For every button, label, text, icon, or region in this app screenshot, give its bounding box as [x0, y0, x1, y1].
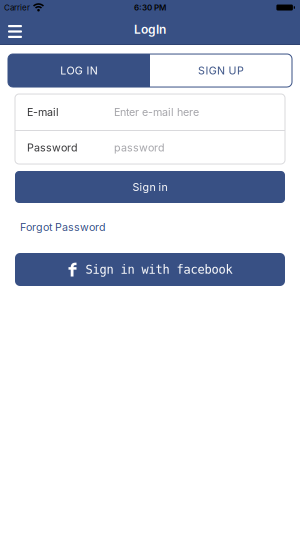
staticText: Password: [27, 141, 78, 154]
button[interactable]: Forgot Password: [20, 221, 106, 233]
staticText: Carrier: [4, 3, 30, 12]
staticText: Enter e-mail here: [114, 106, 199, 118]
staticText: Forgot Password: [20, 221, 106, 233]
button[interactable]: Password: [15, 141, 285, 154]
button[interactable]: LOG IN: [8, 54, 150, 87]
staticText: LOG IN: [60, 64, 98, 77]
staticText: 6:30 PM: [134, 3, 166, 12]
staticText: SIGN UP: [198, 64, 244, 77]
staticText: E-mail: [27, 106, 59, 118]
button[interactable]: Sign in with facebook: [15, 253, 285, 286]
button[interactable]: E-mail: [15, 106, 285, 118]
staticText: Sign in with facebook: [85, 263, 232, 276]
button[interactable]: Menu: [0, 15, 30, 44]
staticText: LogIn: [134, 22, 166, 37]
button[interactable]: SIGN UP: [150, 54, 292, 87]
button[interactable]: Sign in: [15, 171, 285, 203]
staticText: password: [114, 141, 165, 154]
staticText: Sign in: [132, 181, 167, 193]
